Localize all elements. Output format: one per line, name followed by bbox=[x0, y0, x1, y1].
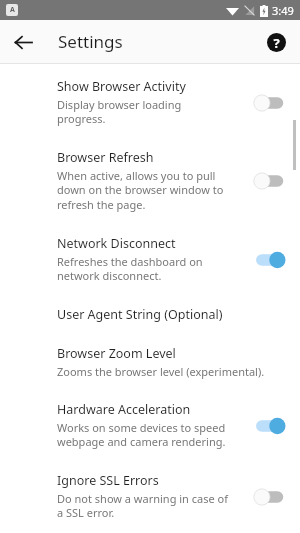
staticText: Show Browser Activity bbox=[57, 78, 186, 95]
staticText: A bbox=[10, 5, 15, 15]
button[interactable]: Browser Refresh bbox=[0, 135, 300, 221]
staticText: Zooms the browser level (experimental). bbox=[57, 364, 265, 379]
button[interactable]: Ignore SSL Errors bbox=[0, 458, 300, 529]
button[interactable]: Browser Zoom Level bbox=[0, 331, 300, 387]
staticText: Settings bbox=[58, 30, 123, 53]
button[interactable]: Network Disconnect bbox=[0, 221, 300, 292]
button[interactable]: Toggle on bbox=[254, 415, 288, 437]
staticText: Do not show a warning in case of a SSL e… bbox=[57, 491, 229, 521]
staticText: When active, allows you to pull down on … bbox=[57, 168, 224, 213]
staticText: 3:49 bbox=[272, 3, 294, 18]
staticText: Ignore SSL Errors bbox=[57, 472, 159, 489]
button[interactable]: Toggle off bbox=[254, 486, 288, 508]
staticText: Browser Refresh bbox=[57, 149, 154, 166]
button[interactable]: User Agent String (Optional) bbox=[0, 292, 300, 331]
button[interactable]: Show Browser Activity bbox=[0, 64, 300, 135]
staticText: ? bbox=[273, 34, 280, 52]
staticText: Browser Zoom Level bbox=[57, 345, 176, 362]
staticText: Refreshes the dashboard on network disco… bbox=[57, 254, 203, 284]
staticText: Display browser loading progress. bbox=[57, 97, 182, 127]
button[interactable]: Toggle off bbox=[254, 170, 288, 192]
button[interactable]: Toggle on bbox=[254, 249, 288, 271]
staticText: User Agent String (Optional) bbox=[57, 306, 223, 323]
button[interactable]: Help bbox=[259, 25, 293, 59]
button[interactable]: Toggle off bbox=[254, 92, 288, 114]
button[interactable]: Back bbox=[6, 25, 40, 59]
staticText: Works on some devices to speed webpage a… bbox=[57, 420, 226, 450]
staticText: Hardware Acceleration bbox=[57, 401, 191, 418]
button[interactable]: Hardware Acceleration bbox=[0, 387, 300, 458]
staticText: Network Disconnect bbox=[57, 235, 176, 252]
